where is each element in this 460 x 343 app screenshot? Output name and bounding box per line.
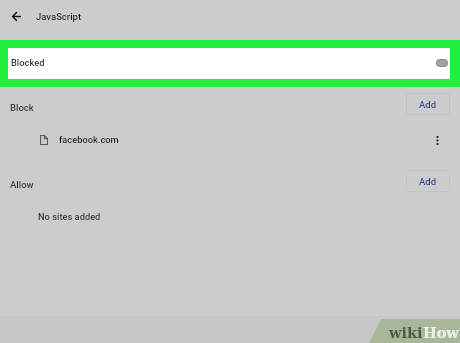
button[interactable]: Toggle JavaScript bbox=[431, 52, 453, 74]
staticText: Add bbox=[419, 99, 437, 110]
button[interactable]: Add bbox=[406, 170, 450, 192]
staticText: Allow bbox=[10, 179, 34, 190]
staticText: wiki bbox=[389, 324, 423, 341]
staticText: How bbox=[423, 324, 459, 341]
staticText: JavaScript bbox=[36, 11, 82, 22]
staticText: No sites added bbox=[38, 211, 101, 222]
button[interactable]: More options bbox=[428, 131, 446, 149]
button[interactable]: facebook.com bbox=[0, 124, 460, 156]
staticText: Add bbox=[419, 176, 437, 187]
staticText: Block bbox=[10, 102, 34, 113]
staticText: Blocked bbox=[11, 57, 45, 68]
staticText: facebook.com bbox=[59, 134, 119, 145]
button[interactable]: Add bbox=[406, 93, 450, 115]
button[interactable]: Blocked bbox=[8, 48, 450, 79]
button[interactable]: Back bbox=[4, 4, 28, 28]
